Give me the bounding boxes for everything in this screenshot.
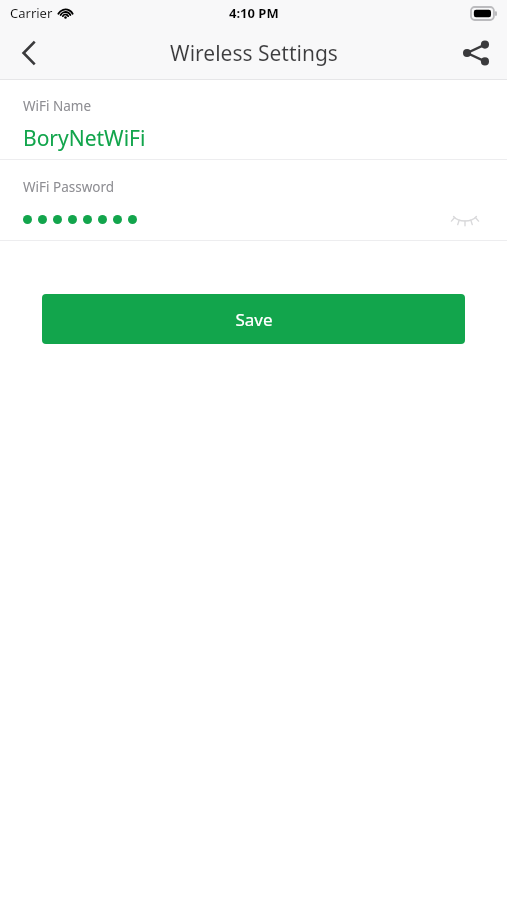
staticText: WiFi Name [23,97,92,115]
button[interactable]: Show password [443,204,487,234]
button[interactable]: WiFi Password [0,178,507,240]
staticText: BoryNetWiFi [23,124,146,153]
button[interactable]: Share [445,26,507,80]
staticText: Carrier [10,4,53,22]
button[interactable]: WiFi Name [0,97,507,159]
staticText: 4:10 PM [229,4,279,22]
staticText: Save [235,308,273,331]
button[interactable]: Save [42,294,465,344]
button[interactable]: Back [0,26,58,80]
staticText: Wireless Settings [170,39,338,68]
staticText: WiFi Password [23,178,115,196]
